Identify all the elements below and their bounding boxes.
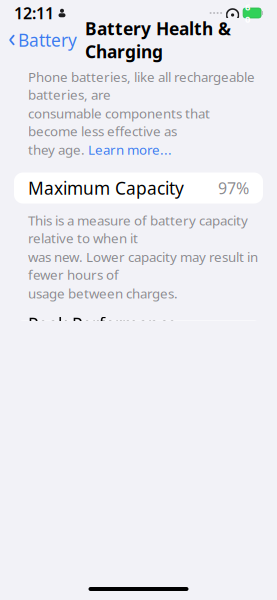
staticText: Peak Performance Capability — [28, 312, 177, 358]
staticText: Battery — [18, 28, 77, 51]
staticText: was new. Lower capacity may result in fe… — [28, 248, 258, 283]
staticText: Battery Health & Charging — [85, 17, 231, 63]
button[interactable]: Peak Performance Capability — [14, 320, 263, 351]
staticText: daily charging routine so it can wait to… — [28, 561, 256, 596]
staticText: usage between charges. — [28, 284, 178, 302]
staticText: This is a measure of battery capacity re… — [28, 211, 248, 247]
staticText: Maximum Capacity — [28, 176, 184, 199]
staticText: they age. — [28, 141, 85, 158]
staticText: 97% — [218, 177, 249, 199]
staticText: Phone batteries, like all rechargeable b… — [28, 68, 255, 103]
staticText: 60 — [245, 1, 250, 25]
button[interactable]: Battery — [0, 24, 77, 55]
staticText: 12:11 — [14, 2, 54, 24]
staticText: consumable components that become less e… — [28, 104, 210, 140]
button[interactable]: Learn more... — [88, 141, 172, 158]
staticText: Learn more... — [88, 141, 172, 158]
